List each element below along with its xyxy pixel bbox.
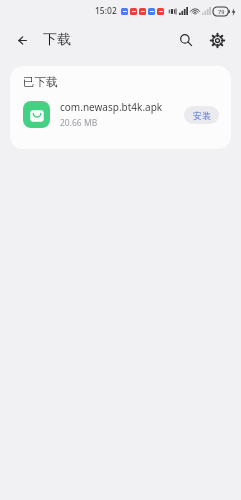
staticText: 20.66 MB xyxy=(60,117,98,129)
staticText: 已下载 xyxy=(23,75,58,89)
staticText: 79 xyxy=(218,8,225,15)
staticText: com.newasp.bt4k.apk xyxy=(60,100,163,114)
staticText: 下载 xyxy=(43,31,71,49)
staticText: 15:02 xyxy=(95,5,117,17)
staticText: 安装 xyxy=(193,110,211,121)
button[interactable]: Settings xyxy=(204,27,230,53)
button[interactable]: Search xyxy=(173,27,199,53)
button[interactable]: Back xyxy=(11,28,35,52)
button[interactable]: com.newasp.bt4k.apk xyxy=(10,97,231,132)
button[interactable]: 安装 xyxy=(184,106,219,124)
